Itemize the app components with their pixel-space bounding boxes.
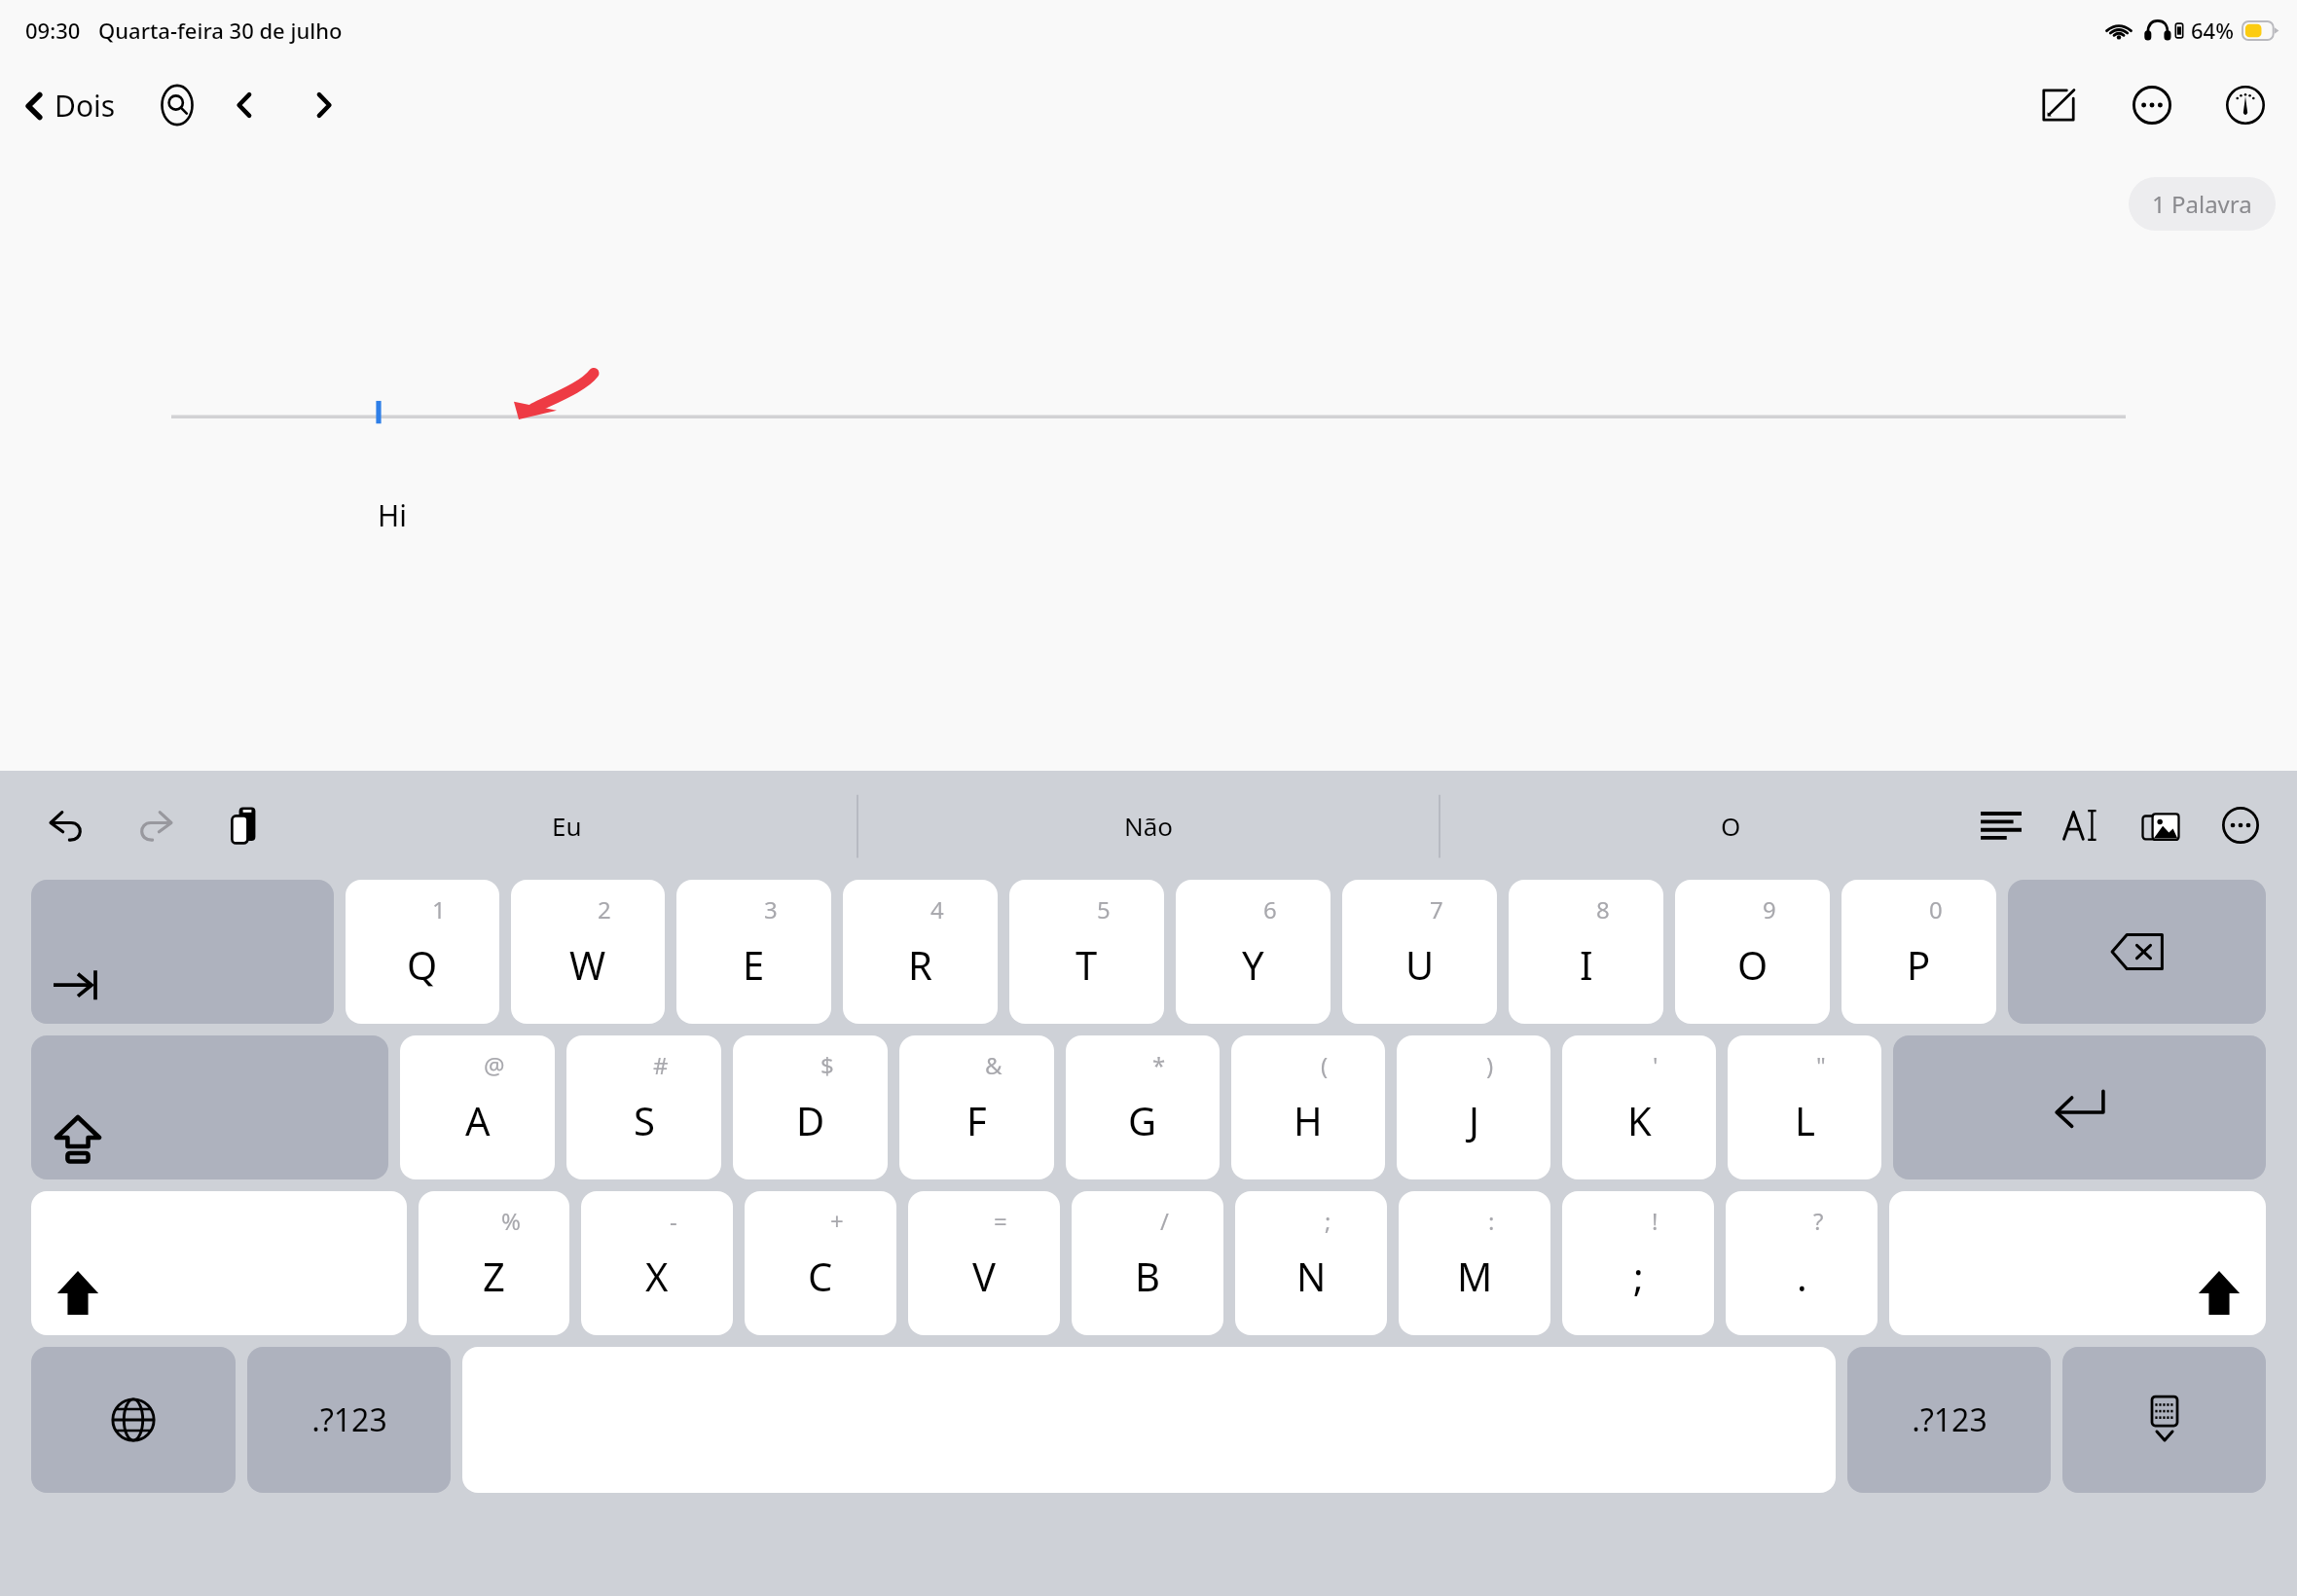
- staticText: O: [1721, 809, 1741, 843]
- staticText: ": [1816, 1049, 1826, 1081]
- button[interactable]: Return: [1893, 1035, 2266, 1179]
- staticText: 09:30: [25, 16, 81, 45]
- staticText: &: [985, 1049, 1003, 1081]
- button[interactable]: Info: [2215, 75, 2276, 135]
- button[interactable]: Backspace: [2008, 880, 2266, 1024]
- staticText: ;: [1325, 1205, 1331, 1237]
- button[interactable]: Hide keyboard: [2062, 1347, 2266, 1493]
- button[interactable]: Paste: [218, 798, 273, 852]
- button[interactable]: Next: [297, 77, 353, 133]
- button[interactable]: =: [908, 1191, 1060, 1335]
- button[interactable]: 0: [1841, 880, 1996, 1024]
- button[interactable]: !: [1562, 1191, 1714, 1335]
- button[interactable]: 2: [511, 880, 665, 1024]
- staticText: N: [1296, 1250, 1327, 1302]
- button[interactable]: Shift right: [1889, 1191, 2266, 1335]
- button[interactable]: $: [733, 1035, 888, 1179]
- button[interactable]: Previous: [215, 77, 272, 133]
- staticText: (: [1321, 1049, 1329, 1081]
- button[interactable]: Tab: [31, 880, 334, 1024]
- staticText: Q: [407, 938, 438, 991]
- button[interactable]: O: [1440, 771, 2022, 880]
- button[interactable]: Change keyboard: [31, 1347, 236, 1493]
- button[interactable]: &: [899, 1035, 1054, 1179]
- button[interactable]: 4: [843, 880, 998, 1024]
- staticText: X: [645, 1250, 669, 1302]
- staticText: L: [1795, 1094, 1815, 1146]
- staticText: !: [1652, 1205, 1659, 1237]
- button[interactable]: ;: [1235, 1191, 1387, 1335]
- button[interactable]: *: [1066, 1035, 1220, 1179]
- button[interactable]: More: [2213, 798, 2268, 852]
- button[interactable]: @: [400, 1035, 555, 1179]
- button[interactable]: /: [1072, 1191, 1223, 1335]
- button[interactable]: ?: [1726, 1191, 1878, 1335]
- button[interactable]: Format: [1974, 798, 2028, 852]
- staticText: V: [972, 1250, 996, 1302]
- staticText: D: [796, 1094, 825, 1146]
- staticText: E: [743, 938, 765, 991]
- staticText: @: [484, 1049, 505, 1081]
- button[interactable]: -: [581, 1191, 733, 1335]
- button[interactable]: ': [1562, 1035, 1716, 1179]
- button[interactable]: (: [1231, 1035, 1385, 1179]
- staticText: 8: [1596, 893, 1610, 925]
- button[interactable]: :: [1399, 1191, 1550, 1335]
- button[interactable]: Dois: [14, 80, 126, 131]
- staticText: 1: [432, 893, 446, 925]
- button[interactable]: Undo: [39, 798, 93, 852]
- staticText: 2: [598, 893, 611, 925]
- staticText: Z: [483, 1250, 505, 1302]
- staticText: H: [1294, 1094, 1323, 1146]
- staticText: U: [1405, 938, 1435, 991]
- staticText: R: [908, 938, 932, 991]
- staticText: A: [465, 1094, 491, 1146]
- button[interactable]: Redo: [128, 798, 183, 852]
- button[interactable]: Não: [857, 771, 1440, 880]
- button[interactable]: Text style: [2054, 798, 2108, 852]
- button[interactable]: Search: [149, 77, 205, 133]
- button[interactable]: ": [1728, 1035, 1881, 1179]
- button[interactable]: Eu: [275, 771, 857, 880]
- staticText: ?: [1813, 1205, 1824, 1237]
- staticText: S: [634, 1094, 655, 1146]
- staticText: K: [1627, 1094, 1652, 1146]
- staticText: 3: [764, 893, 778, 925]
- staticText: 4: [930, 893, 944, 925]
- button[interactable]: #: [566, 1035, 721, 1179]
- staticText: O: [1737, 938, 1768, 991]
- staticText: Y: [1242, 938, 1264, 991]
- button[interactable]: 1: [346, 880, 499, 1024]
- staticText: P: [1907, 938, 1931, 991]
- staticText: M: [1457, 1250, 1493, 1302]
- staticText: Eu: [552, 809, 582, 843]
- button[interactable]: More options: [2122, 75, 2182, 135]
- button[interactable]: .?123: [1847, 1347, 2051, 1493]
- button[interactable]: +: [745, 1191, 896, 1335]
- staticText: 6: [1263, 893, 1277, 925]
- staticText: =: [994, 1205, 1007, 1237]
- staticText: Quarta-feira 30 de julho: [98, 16, 343, 45]
- button[interactable]: 6: [1176, 880, 1331, 1024]
- button[interactable]: ): [1397, 1035, 1550, 1179]
- button[interactable]: Insert photo: [2133, 798, 2188, 852]
- staticText: ': [1653, 1049, 1659, 1081]
- staticText: C: [808, 1250, 833, 1302]
- button[interactable]: .?123: [247, 1347, 451, 1493]
- staticText: %: [501, 1205, 521, 1237]
- staticText: ): [1486, 1049, 1494, 1081]
- staticText: :: [1488, 1205, 1495, 1237]
- button[interactable]: 9: [1675, 880, 1830, 1024]
- button[interactable]: Caps lock: [31, 1035, 388, 1179]
- button[interactable]: Shift: [31, 1191, 407, 1335]
- button[interactable]: 1 Palavra: [2129, 177, 2276, 231]
- button[interactable]: 5: [1009, 880, 1164, 1024]
- button[interactable]: 8: [1509, 880, 1663, 1024]
- button[interactable]: 3: [676, 880, 831, 1024]
- staticText: -: [670, 1205, 677, 1237]
- staticText: G: [1128, 1094, 1157, 1146]
- button[interactable]: Compose: [2028, 75, 2089, 135]
- button[interactable]: 7: [1342, 880, 1497, 1024]
- button[interactable]: %: [419, 1191, 569, 1335]
